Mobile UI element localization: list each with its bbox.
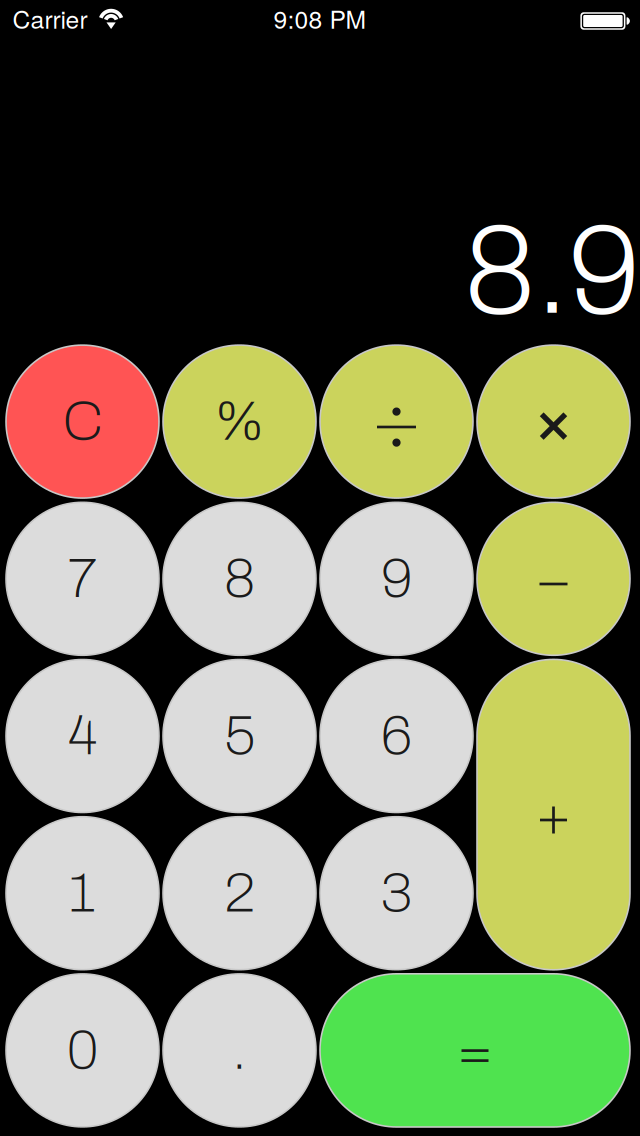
staticText: 8.9 — [464, 203, 640, 339]
staticText: 3 — [381, 863, 412, 923]
staticText: 1 — [70, 863, 95, 923]
button[interactable]: C — [6, 345, 159, 498]
button[interactable]: 2 — [163, 817, 316, 970]
staticText: . — [232, 1021, 246, 1080]
staticText: % — [214, 392, 265, 451]
button[interactable]: Equals — [320, 974, 630, 1127]
button[interactable]: . — [163, 974, 316, 1127]
staticText: 4 — [68, 706, 97, 766]
staticText: Carrier — [12, 0, 87, 36]
staticText: 6 — [381, 706, 412, 766]
button[interactable]: 4 — [6, 659, 159, 813]
button[interactable]: 9 — [320, 502, 473, 655]
button[interactable]: Minus — [477, 502, 630, 655]
staticText: 2 — [224, 863, 254, 923]
staticText: 5 — [224, 706, 255, 766]
staticText: 9:08 PM — [273, 0, 366, 36]
staticText: C — [62, 392, 102, 451]
button[interactable]: % — [163, 345, 316, 498]
button[interactable]: 1 — [6, 817, 159, 970]
staticText: 8 — [224, 549, 255, 609]
staticText: 9 — [381, 549, 412, 609]
button[interactable]: 3 — [320, 817, 473, 970]
button[interactable]: Divide — [320, 345, 473, 498]
button[interactable]: Multiply — [477, 345, 630, 498]
button[interactable]: 7 — [6, 502, 159, 655]
staticText: 7 — [68, 549, 97, 609]
button[interactable]: 0 — [6, 974, 159, 1127]
button[interactable]: Plus — [477, 659, 630, 970]
button[interactable]: 5 — [163, 659, 316, 813]
staticText: 0 — [67, 1021, 98, 1080]
button[interactable]: 6 — [320, 659, 473, 813]
button[interactable]: 8 — [163, 502, 316, 655]
